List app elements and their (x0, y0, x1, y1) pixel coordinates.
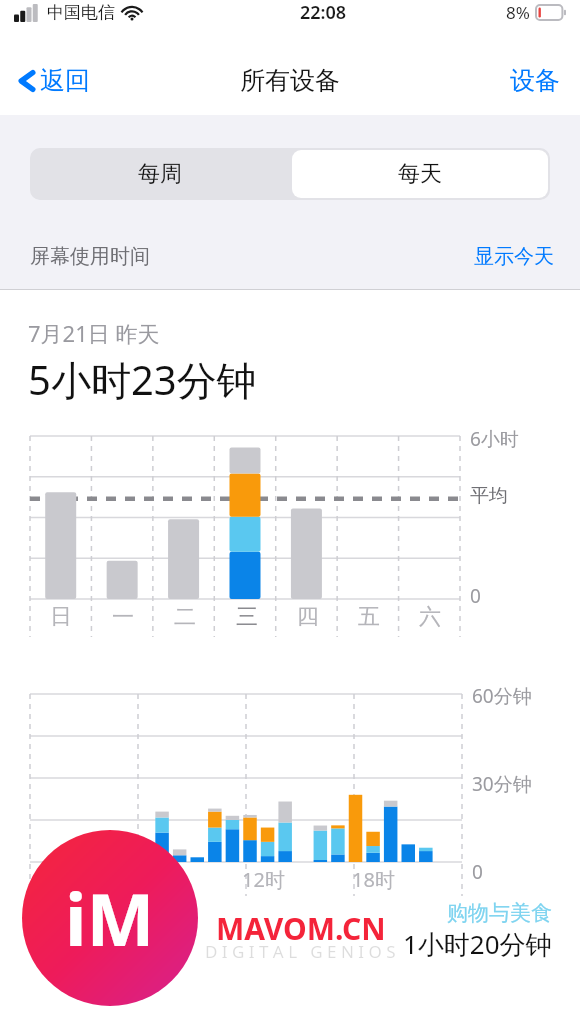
button[interactable]: 购物与美食 (290, 900, 552, 962)
staticText: 一 (112, 603, 134, 631)
staticText: 每周 (138, 160, 182, 188)
staticText: 7月21日 昨天 (28, 318, 160, 348)
staticText: 1小时20分钟 (403, 926, 552, 962)
staticText: 日 (50, 603, 72, 631)
staticText: iM (65, 869, 155, 967)
staticText: 显示今天 (474, 244, 554, 269)
staticText: 购物与美食 (447, 900, 552, 926)
staticText: 6小时 (470, 426, 519, 452)
staticText: 30分钟 (472, 771, 532, 797)
button[interactable]: 创意 (28, 900, 290, 962)
staticText: 三 (236, 603, 258, 631)
staticText: 所有设备 (240, 65, 340, 96)
staticText: 每天 (398, 160, 442, 188)
staticText: 1小时30分钟 (28, 926, 177, 962)
staticText: MAVOM.CN (216, 908, 386, 949)
button[interactable]: 每周 (30, 148, 290, 200)
staticText: 设备 (510, 65, 560, 96)
button[interactable]: 设备 (504, 59, 566, 102)
staticText: 四 (297, 603, 319, 631)
staticText: 60分钟 (472, 683, 532, 709)
staticText: 12时 (242, 866, 285, 893)
staticText: 五 (358, 603, 380, 631)
staticText: 18时 (352, 866, 395, 893)
staticText: 8% (506, 1, 530, 24)
staticText: D I G I T A L G E N I O S (205, 940, 396, 963)
staticText: 屏幕使用时间 (30, 244, 150, 269)
button[interactable]: 每天 (292, 150, 548, 198)
staticText: 0 (470, 583, 481, 609)
staticText: 平均 (470, 484, 508, 508)
staticText: 中国电信 (47, 2, 115, 23)
staticText: 六 (419, 603, 441, 631)
staticText: 0 (472, 859, 483, 885)
staticText: 22:08 (300, 0, 347, 25)
staticText: 二 (174, 603, 196, 631)
staticText: 5小时23分钟 (28, 352, 257, 407)
staticText: 返回 (40, 65, 90, 96)
button[interactable]: 返回 (14, 59, 94, 102)
button[interactable]: 显示今天 (474, 244, 554, 269)
